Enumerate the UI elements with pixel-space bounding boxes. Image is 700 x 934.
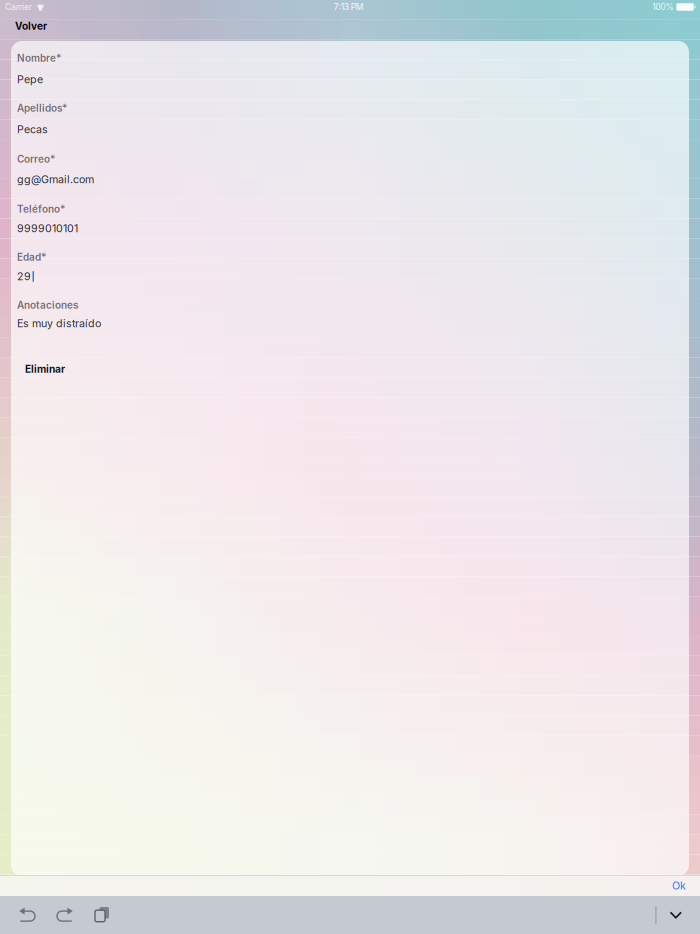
staticText: Volver [15,20,47,32]
staticText: gg@Gmail.com [17,173,94,186]
button[interactable]: Ok [662,875,700,896]
button[interactable]: Eliminar [15,357,77,381]
staticText: Nombre* [17,52,61,64]
staticText: Edad* [17,251,46,263]
staticText: Carrier [5,2,32,12]
button[interactable]: Redo [55,896,92,934]
staticText: 7:13 PM [334,2,364,12]
staticText: Anotaciones [17,299,78,311]
staticText: 29 [17,270,31,283]
staticText: Ok [672,879,686,892]
staticText: Apellidos* [17,102,67,114]
staticText: 100% [652,2,673,12]
staticText: Eliminar [25,363,65,375]
staticText: Es muy distraído [17,317,101,330]
staticText: Teléfono* [17,203,65,215]
staticText: Pecas [17,123,48,136]
staticText: Pepe [17,73,43,86]
button[interactable]: Paste [92,896,125,934]
button[interactable]: Hide keyboard [657,897,700,933]
button[interactable]: Volver [0,14,59,38]
staticText: Correo* [17,153,55,165]
staticText: 9999010101 [17,222,78,235]
button[interactable]: Undo [0,896,55,934]
